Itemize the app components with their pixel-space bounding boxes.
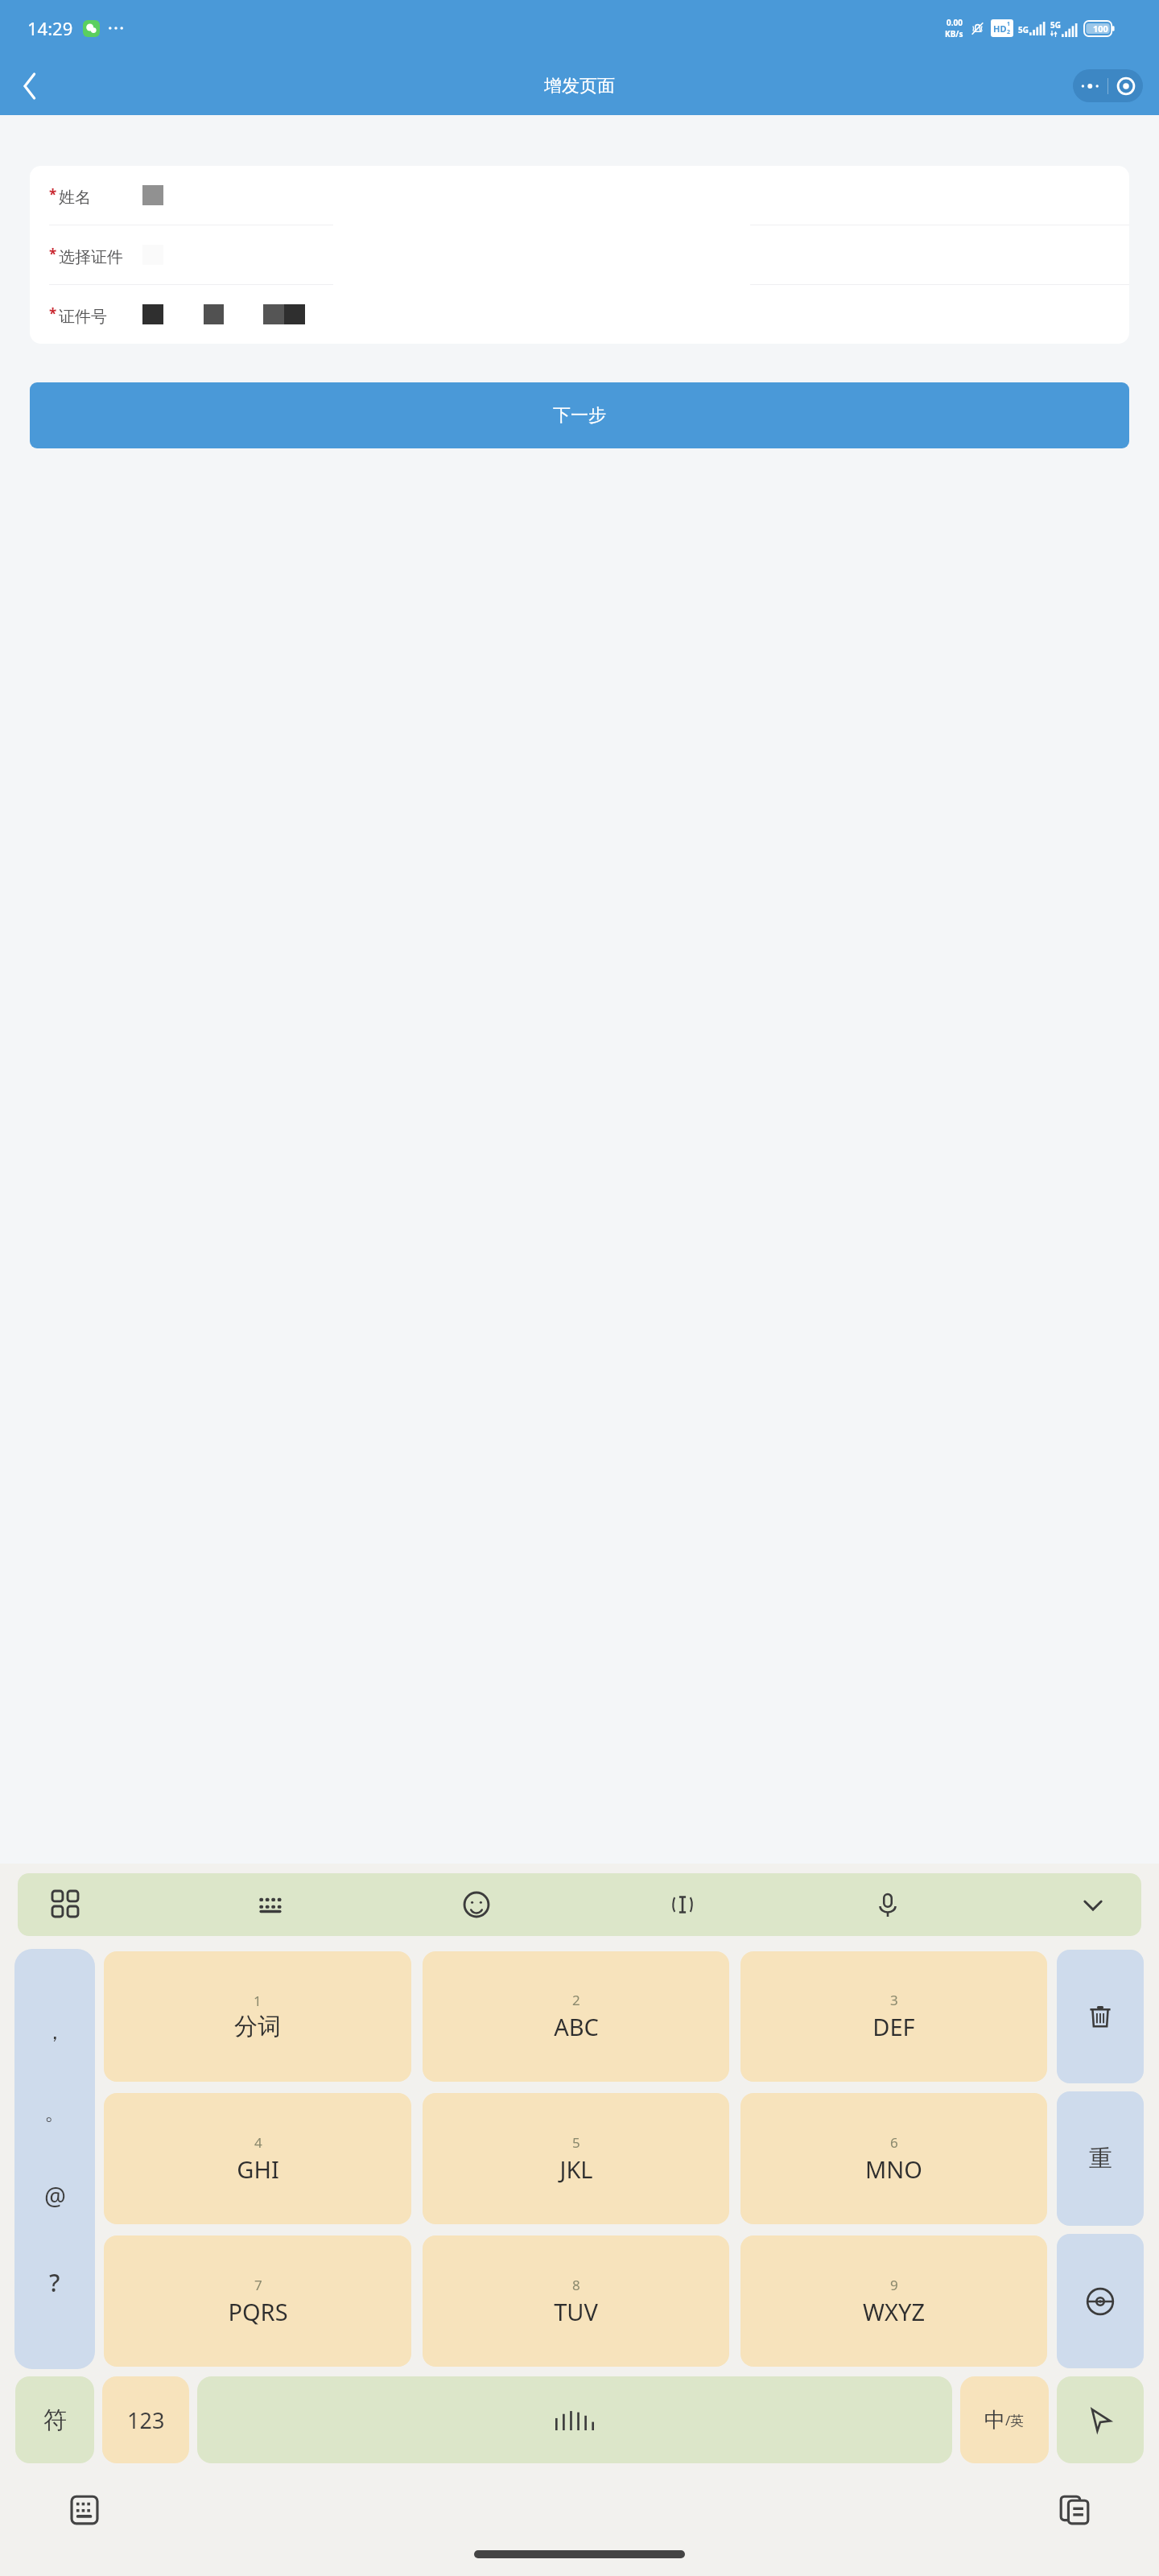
staticText: 100 (1093, 23, 1108, 35)
button[interactable]: 8 (423, 2235, 729, 2367)
button[interactable]: Emoji (456, 1884, 497, 1926)
staticText: JKL (559, 2153, 593, 2185)
staticText: 7 (254, 2276, 262, 2294)
button[interactable]: Switch keyboard (64, 2490, 105, 2530)
button[interactable]: Clipboard (1054, 2490, 1095, 2530)
button[interactable]: Mini program menu (1073, 69, 1143, 102)
staticText: KB/s (945, 28, 963, 39)
button[interactable]: Apps (45, 1884, 87, 1926)
staticText: TUV (554, 2296, 598, 2327)
button[interactable]: Voice input (867, 1884, 909, 1926)
staticText: PQRS (228, 2296, 288, 2327)
button[interactable]: 5 (423, 2093, 729, 2224)
staticText: 姓名 (59, 188, 91, 208)
staticText: 中 (984, 2407, 1005, 2434)
button[interactable]: Space (197, 2376, 952, 2463)
button[interactable]: Keyboard layout (250, 1884, 292, 1926)
staticText: 5G (1018, 24, 1029, 35)
staticText: 14:29 (27, 16, 73, 40)
button[interactable]: 9 (740, 2235, 1047, 2367)
staticText: 选择证件 (59, 247, 123, 267)
staticText: * (49, 245, 57, 263)
staticText: 123 (127, 2405, 165, 2435)
button[interactable]: Enter (1057, 2234, 1144, 2368)
button[interactable]: Back (8, 64, 52, 108)
staticText: 增发页面 (544, 75, 615, 97)
staticText: ABC (554, 2011, 599, 2042)
staticText: 1 (1007, 20, 1011, 28)
staticText: GHI (237, 2153, 279, 2185)
staticText: HD (993, 23, 1007, 35)
staticText: 重 (1089, 2144, 1112, 2173)
button[interactable]: Repeat (1057, 2091, 1144, 2226)
staticText: 证件号 (59, 307, 107, 327)
staticText: * (49, 185, 57, 204)
button[interactable]: Text cursor (662, 1884, 703, 1926)
staticText: 符 (43, 2405, 67, 2435)
staticText: 2 (572, 1991, 580, 2009)
staticText: * (49, 304, 57, 323)
staticText: 下一步 (553, 404, 606, 427)
button[interactable]: Chinese English switch (960, 2376, 1049, 2463)
button[interactable]: * (30, 225, 1129, 284)
staticText: ， (44, 2019, 65, 2046)
button[interactable]: * (30, 285, 1129, 344)
staticText: ? (49, 2266, 60, 2299)
button[interactable]: 7 (104, 2235, 411, 2367)
staticText: MNO (865, 2153, 922, 2185)
button[interactable]: 4 (104, 2093, 411, 2224)
staticText: 5 (572, 2133, 580, 2152)
staticText: 。 (44, 2099, 65, 2126)
button[interactable]: 1 (104, 1951, 411, 2082)
staticText: 2 (1007, 28, 1011, 36)
staticText: 9 (890, 2276, 898, 2294)
staticText: WXYZ (863, 2296, 925, 2327)
staticText: 5G (1050, 19, 1061, 31)
staticText: /英 (1005, 2411, 1025, 2429)
button[interactable]: Numbers (102, 2376, 189, 2463)
staticText: 6 (890, 2133, 898, 2152)
staticText: 4 (254, 2133, 262, 2152)
button[interactable]: Send (1057, 2376, 1144, 2463)
button[interactable]: 6 (740, 2093, 1047, 2224)
staticText: 分词 (234, 2012, 281, 2041)
staticText: 8 (572, 2276, 580, 2294)
button[interactable]: Symbols (15, 2376, 94, 2463)
button[interactable]: Punctuation (14, 1949, 95, 2369)
button[interactable]: 下一步 (30, 382, 1129, 448)
button[interactable]: 3 (740, 1951, 1047, 2082)
button[interactable]: Hide keyboard (1072, 1884, 1114, 1926)
button[interactable]: Delete (1057, 1950, 1144, 2083)
staticText: DEF (872, 2011, 915, 2042)
staticText: 0.00 (947, 17, 963, 28)
button[interactable]: * (30, 166, 1129, 225)
button[interactable]: 2 (423, 1951, 729, 2082)
staticText: 1 (254, 1992, 262, 2010)
staticText: 3 (890, 1991, 898, 2009)
staticText: @ (44, 2179, 66, 2212)
